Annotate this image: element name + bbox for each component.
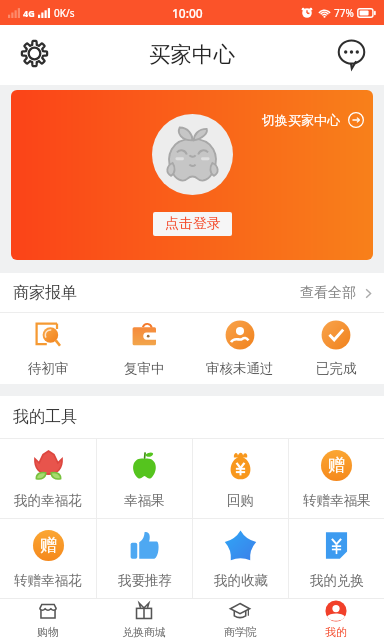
staticText: 复审中 <box>124 360 165 377</box>
button[interactable]: 赠 <box>0 519 96 598</box>
staticText: 兑换商城 <box>122 625 166 639</box>
button[interactable]: 兑换商城 <box>96 599 192 640</box>
button[interactable]: 商学院 <box>192 599 288 640</box>
button[interactable]: 点击登录 <box>153 212 232 236</box>
staticText: 4G <box>23 7 35 19</box>
staticText: 我的兑换 <box>310 572 364 589</box>
button[interactable]: 购物 <box>0 599 96 640</box>
button[interactable]: 待初审 <box>0 313 96 384</box>
staticText: 我的 <box>325 625 347 639</box>
staticText: 商家报单 <box>13 283 77 303</box>
button[interactable]: 我的兑换 <box>289 519 384 598</box>
button[interactable]: More <box>331 34 371 74</box>
button[interactable]: 赠 <box>289 439 384 518</box>
button[interactable]: 我要推荐 <box>97 519 192 598</box>
button[interactable]: 回购 <box>193 439 288 518</box>
staticText: 回购 <box>227 492 254 509</box>
button[interactable]: 审核未通过 <box>192 313 288 384</box>
staticText: 转赠幸福果 <box>303 492 371 509</box>
staticText: 商学院 <box>224 625 257 639</box>
button[interactable]: 查看全部 <box>300 284 375 302</box>
staticText: 切换买家中心 <box>262 112 340 128</box>
button[interactable]: 我的收藏 <box>193 519 288 598</box>
staticText: 幸福果 <box>124 492 165 509</box>
button[interactable]: 我的幸福花 <box>0 439 96 518</box>
staticText: 赠 <box>40 535 57 556</box>
staticText: 购物 <box>37 625 59 639</box>
button[interactable]: 已完成 <box>288 313 384 384</box>
button[interactable]: 幸福果 <box>97 439 192 518</box>
button[interactable]: 复审中 <box>96 313 192 384</box>
staticText: 买家中心 <box>149 41 235 68</box>
button[interactable]: 切换买家中心 <box>11 90 373 260</box>
staticText: 我的收藏 <box>214 572 268 589</box>
staticText: 10:00 <box>172 5 203 21</box>
staticText: 我的幸福花 <box>14 492 82 509</box>
staticText: 我的工具 <box>13 407 77 427</box>
staticText: 转赠幸福花 <box>14 572 82 589</box>
staticText: 我要推荐 <box>118 572 172 589</box>
staticText: 0K/s <box>54 6 75 20</box>
button[interactable]: 我的 <box>288 599 384 640</box>
staticText: 待初审 <box>28 360 69 377</box>
button[interactable]: Settings <box>14 33 54 73</box>
staticText: 77% <box>334 6 354 20</box>
staticText: 点击登录 <box>165 215 221 233</box>
button[interactable]: 切换买家中心 <box>262 112 364 128</box>
staticText: 已完成 <box>316 360 357 377</box>
staticText: 审核未通过 <box>206 360 274 377</box>
staticText: 查看全部 <box>300 284 356 302</box>
staticText: 赠 <box>328 455 345 476</box>
